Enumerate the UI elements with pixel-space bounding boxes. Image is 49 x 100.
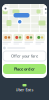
button[interactable]: Map options xyxy=(43,5,48,16)
button[interactable] xyxy=(2,34,12,45)
staticText: Offer your fare xyxy=(11,53,38,59)
button[interactable] xyxy=(13,34,23,45)
staticText: Place order xyxy=(14,66,35,72)
staticText: Uber Eats xyxy=(15,87,33,92)
button[interactable]: Back xyxy=(2,5,8,11)
button[interactable] xyxy=(24,34,34,45)
button[interactable]: Offer your fare xyxy=(0,51,48,61)
button[interactable] xyxy=(35,34,45,45)
button[interactable]: Place order xyxy=(0,61,48,74)
